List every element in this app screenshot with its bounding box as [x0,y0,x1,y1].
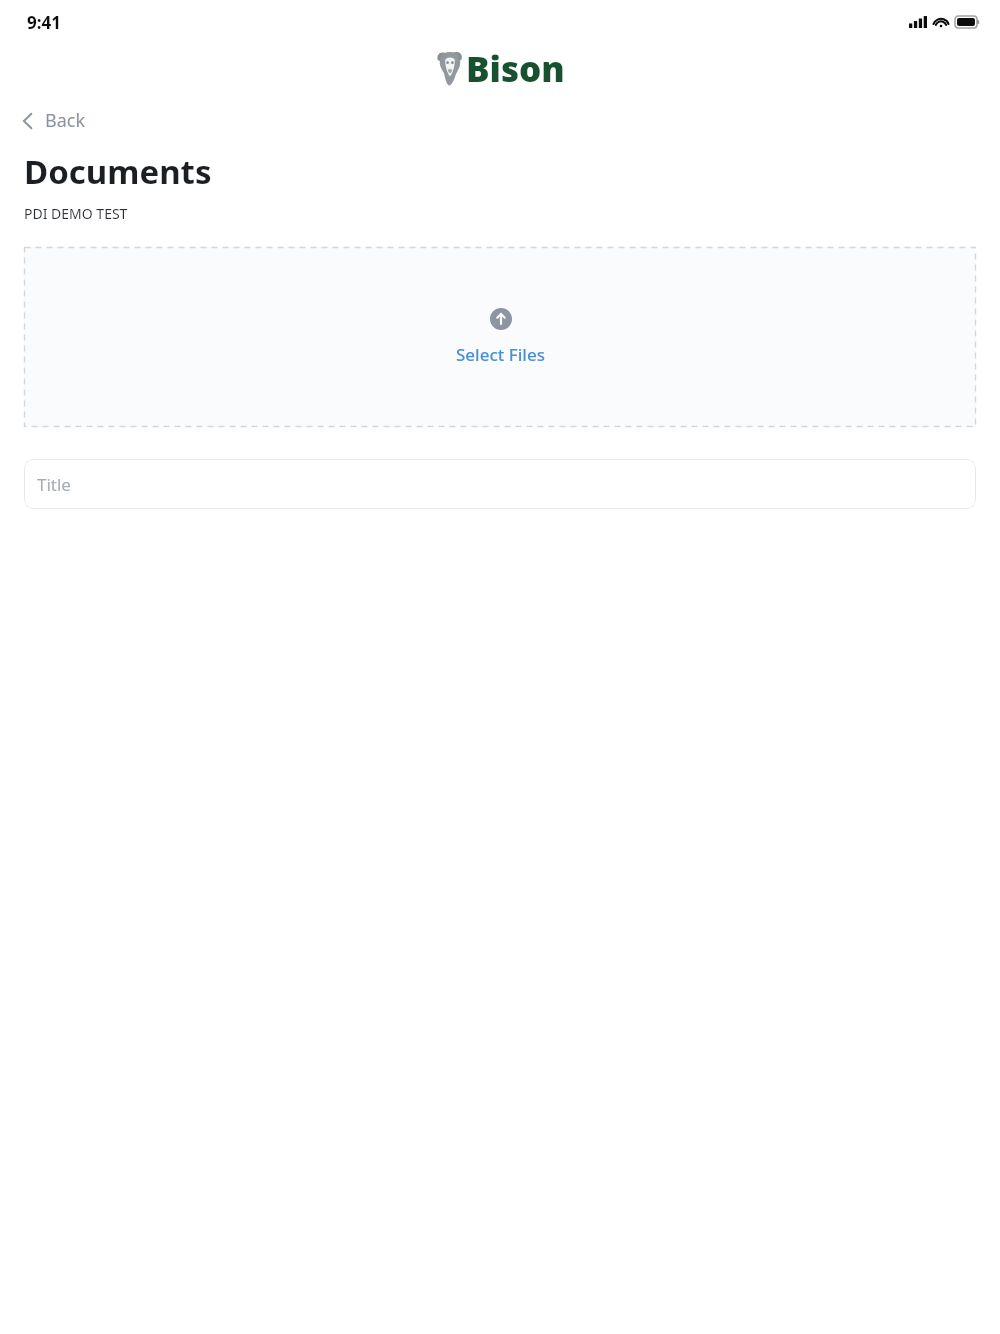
staticText: Bison [466,45,565,93]
staticText: Back [45,108,86,133]
staticText: 9:41 [27,11,61,34]
staticText: Title [37,473,71,496]
staticText: PDI DEMO TEST [24,204,128,223]
button[interactable]: Title [24,459,976,509]
button[interactable]: Back [0,104,98,137]
button[interactable]: Select Files [24,247,976,427]
staticText: Select Files [456,343,545,366]
staticText: Documents [24,149,212,194]
